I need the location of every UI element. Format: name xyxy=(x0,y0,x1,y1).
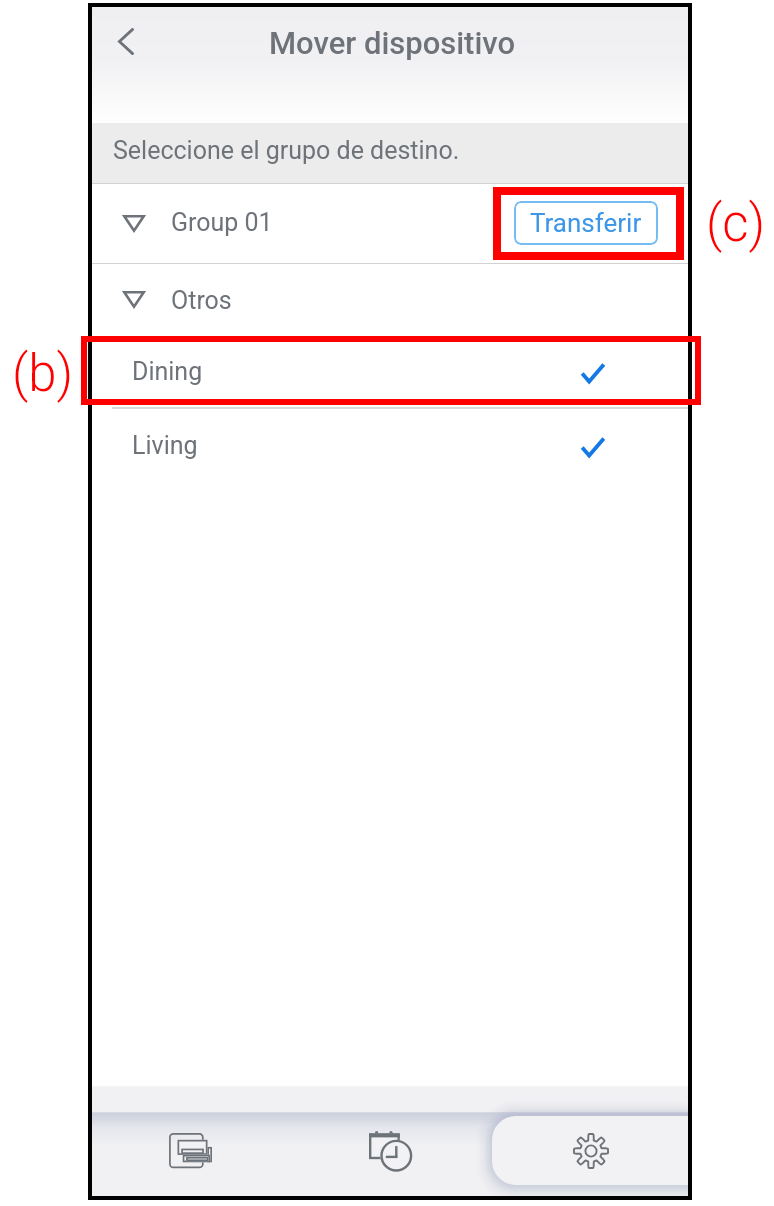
button[interactable]: Otros xyxy=(92,264,688,335)
button[interactable]: Dining xyxy=(92,335,688,407)
staticText: Dining xyxy=(132,357,203,386)
button[interactable]: Settings xyxy=(559,1119,623,1183)
staticText: Mover dispositivo xyxy=(269,25,516,61)
button[interactable]: Transferir xyxy=(514,201,658,245)
staticText: Transferir xyxy=(530,208,642,238)
button[interactable]: Back xyxy=(96,11,156,71)
staticText: Otros xyxy=(171,286,232,315)
button[interactable]: Devices xyxy=(159,1119,223,1183)
staticText: (c) xyxy=(706,194,766,254)
staticText: Group 01 xyxy=(171,208,273,237)
staticText: (b) xyxy=(12,344,74,404)
staticText: Living xyxy=(132,431,198,460)
staticText: Seleccione el grupo de destino. xyxy=(113,136,460,165)
button[interactable]: Schedule xyxy=(359,1119,423,1183)
button[interactable]: Living xyxy=(92,409,688,480)
button[interactable]: Group 01 xyxy=(92,184,688,263)
